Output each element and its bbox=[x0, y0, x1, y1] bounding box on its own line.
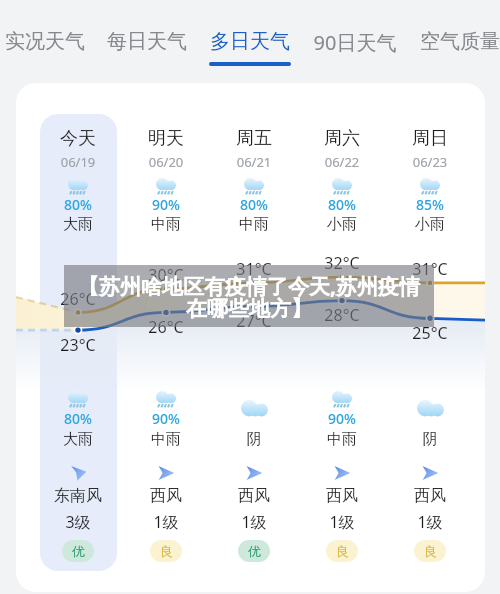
other: Wind direction bbox=[155, 463, 177, 483]
staticText: 周五 bbox=[194, 127, 314, 150]
staticText: 3级 bbox=[18, 511, 138, 533]
button[interactable]: 90日天气 bbox=[303, 29, 407, 67]
button[interactable] bbox=[122, 83, 210, 592]
staticText: 阴 bbox=[194, 430, 314, 449]
staticText: 空气质量 bbox=[408, 29, 500, 54]
staticText: 80% bbox=[194, 195, 314, 214]
button[interactable] bbox=[386, 83, 474, 592]
staticText: 良 bbox=[160, 543, 173, 559]
staticText: 周六 bbox=[282, 127, 402, 150]
staticText: 小雨 bbox=[282, 215, 402, 234]
staticText: 西风 bbox=[194, 486, 314, 506]
staticText: 80% bbox=[282, 195, 402, 214]
staticText: 良 bbox=[424, 543, 437, 559]
staticText: 06/21 bbox=[194, 153, 314, 171]
staticText: 【苏州啥地区有疫情了今天,苏州疫情 bbox=[64, 272, 434, 301]
staticText: 30°C bbox=[106, 264, 226, 286]
staticText: 26°C bbox=[106, 316, 226, 338]
staticText: 31°C bbox=[194, 258, 314, 280]
staticText: 中雨 bbox=[194, 215, 314, 234]
staticText: 西风 bbox=[370, 486, 490, 506]
staticText: 80% bbox=[18, 409, 138, 428]
staticText: 小雨 bbox=[370, 215, 490, 234]
staticText: 90% bbox=[282, 409, 402, 428]
staticText: 中雨 bbox=[282, 430, 402, 449]
staticText: 90日天气 bbox=[303, 29, 407, 56]
staticText: 每日天气 bbox=[95, 29, 199, 54]
staticText: 良 bbox=[336, 543, 349, 559]
staticText: 西风 bbox=[282, 486, 402, 506]
button[interactable]: 空气质量 bbox=[408, 29, 500, 67]
staticText: 32°C bbox=[282, 252, 402, 274]
staticText: 90% bbox=[106, 409, 226, 428]
staticText: 大雨 bbox=[18, 215, 138, 234]
staticText: 27°C bbox=[194, 310, 314, 332]
staticText: 80% bbox=[18, 195, 138, 214]
staticText: 中雨 bbox=[106, 430, 226, 449]
staticText: 西风 bbox=[106, 486, 226, 506]
staticText: 1级 bbox=[106, 511, 226, 533]
staticText: 周日 bbox=[370, 127, 490, 150]
staticText: 优 bbox=[72, 543, 85, 559]
button[interactable] bbox=[298, 83, 386, 592]
staticText: 85% bbox=[370, 195, 490, 214]
staticText: 06/20 bbox=[106, 153, 226, 171]
staticText: 1级 bbox=[370, 511, 490, 533]
staticText: 明天 bbox=[106, 127, 226, 150]
button[interactable] bbox=[34, 83, 122, 592]
staticText: 优 bbox=[248, 543, 261, 559]
button[interactable]: 实况天气 bbox=[0, 29, 97, 67]
staticText: 06/22 bbox=[282, 153, 402, 171]
staticText: 今天 bbox=[18, 127, 138, 150]
staticText: 06/23 bbox=[370, 153, 490, 171]
other: Wind direction bbox=[243, 463, 265, 483]
staticText: 25°C bbox=[370, 322, 490, 344]
staticText: 1级 bbox=[194, 511, 314, 533]
staticText: 23°C bbox=[18, 334, 138, 356]
staticText: 在哪些地方】 bbox=[64, 296, 434, 322]
staticText: 06/19 bbox=[18, 153, 138, 171]
staticText: 多日天气 bbox=[198, 29, 302, 54]
staticText: 大雨 bbox=[18, 430, 138, 449]
button[interactable] bbox=[210, 83, 298, 592]
staticText: 实况天气 bbox=[0, 29, 97, 54]
button[interactable]: 多日天气 bbox=[198, 29, 302, 67]
staticText: 26°C bbox=[18, 288, 138, 310]
button[interactable]: 每日天气 bbox=[95, 29, 199, 67]
staticText: 28°C bbox=[282, 304, 402, 326]
staticText: 中雨 bbox=[106, 215, 226, 234]
staticText: 31°C bbox=[370, 258, 490, 280]
staticText: 1级 bbox=[282, 511, 402, 533]
staticText: 阴 bbox=[370, 430, 490, 449]
other: Wind direction bbox=[67, 463, 89, 483]
staticText: 东南风 bbox=[18, 486, 138, 506]
other: Wind direction bbox=[419, 463, 441, 483]
other: Wind direction bbox=[331, 463, 353, 483]
staticText: 90% bbox=[106, 195, 226, 214]
